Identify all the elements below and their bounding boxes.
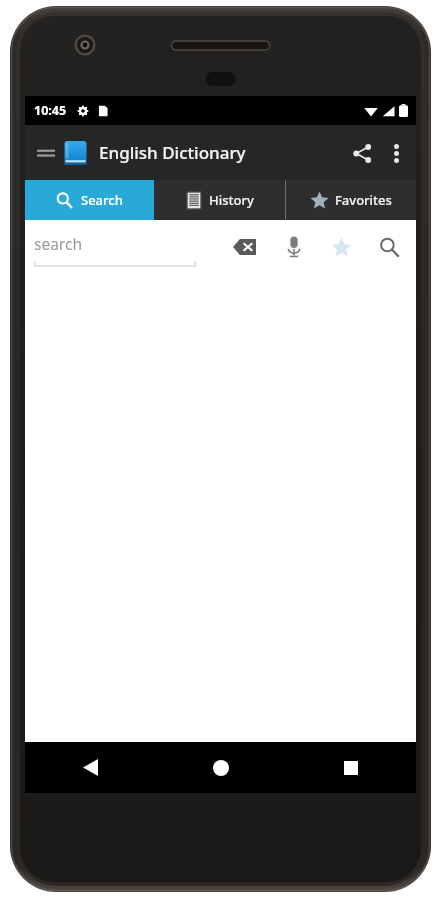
button[interactable]: History [155, 180, 285, 220]
staticText: 10:45 [34, 102, 67, 119]
staticText: Favorites [335, 191, 392, 209]
button[interactable]: Home [156, 742, 286, 793]
button[interactable]: Add to favorites [324, 226, 358, 268]
button[interactable]: Favorites [286, 180, 416, 220]
staticText: search [34, 233, 82, 254]
button[interactable]: Voice search [277, 226, 311, 268]
button[interactable]: More options [381, 131, 411, 175]
button[interactable]: Share [343, 131, 381, 175]
staticText: English Dictionary [99, 141, 246, 164]
button[interactable]: Recent apps [286, 742, 416, 793]
button[interactable]: Back [25, 742, 156, 793]
button[interactable]: Clear [224, 226, 264, 268]
button[interactable]: Search [371, 226, 407, 268]
button[interactable]: Open navigation drawer [31, 133, 61, 173]
staticText: Search [81, 191, 123, 209]
staticText: History [209, 191, 254, 209]
button[interactable]: search [34, 226, 196, 268]
button[interactable]: Search [25, 180, 154, 220]
